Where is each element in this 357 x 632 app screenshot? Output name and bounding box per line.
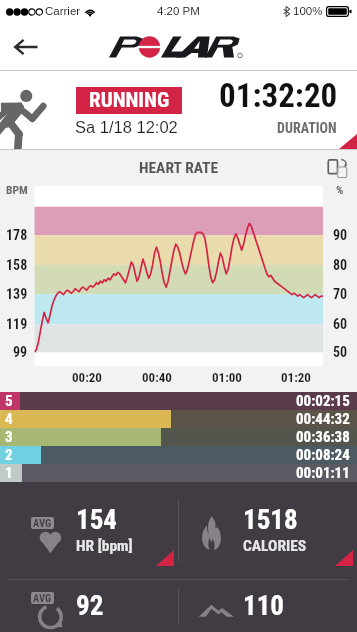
staticText: 00:44:32 xyxy=(296,410,350,428)
staticText: 3 xyxy=(5,428,13,446)
button[interactable]: 4 xyxy=(0,410,357,428)
staticText: 00:02:15 xyxy=(296,392,350,410)
staticText: 154 xyxy=(76,504,117,536)
staticText: 1518 xyxy=(243,504,298,536)
staticText: 139 xyxy=(6,286,28,302)
staticText: 01:20 xyxy=(281,370,311,385)
staticText: 00:08:24 xyxy=(296,446,350,464)
button[interactable]: 3 xyxy=(0,428,357,446)
staticText: HR [bpm] xyxy=(76,537,133,555)
staticText: 90 xyxy=(333,227,348,243)
staticText: HEART RATE xyxy=(139,159,219,177)
staticText: 99 xyxy=(13,344,28,360)
staticText: 119 xyxy=(6,316,28,332)
staticText: 80 xyxy=(333,257,348,273)
staticText: 00:20 xyxy=(72,370,102,385)
staticText: CALORIES xyxy=(243,537,307,555)
staticText: 4:20 PM xyxy=(157,5,200,18)
staticText: 1 xyxy=(5,464,13,482)
staticText: AVG xyxy=(33,517,52,529)
button[interactable]: AVG xyxy=(0,580,178,632)
staticText: 70 xyxy=(333,286,348,302)
staticText: 2 xyxy=(5,446,13,464)
staticText: 4 xyxy=(5,410,13,428)
button[interactable]: 2 xyxy=(0,446,357,464)
staticText: 00:36:38 xyxy=(296,428,350,446)
staticText: % xyxy=(336,183,344,196)
button[interactable]: AVG xyxy=(0,482,178,579)
staticText: RUNNING xyxy=(89,88,170,113)
staticText: 00:40 xyxy=(142,370,172,385)
button[interactable]: 110 xyxy=(179,580,357,632)
staticText: 01:32:20 xyxy=(219,76,338,115)
staticText: 01:00 xyxy=(212,370,242,385)
button[interactable]: 1518 xyxy=(179,482,357,579)
staticText: 5 xyxy=(5,392,13,410)
staticText: 178 xyxy=(6,227,28,243)
staticText: 60 xyxy=(333,316,348,332)
staticText: 50 xyxy=(333,344,348,360)
staticText: 92 xyxy=(76,590,104,622)
staticText: Carrier xyxy=(45,5,81,18)
button[interactable]: Rotate screen xyxy=(323,154,351,182)
button[interactable]: 1 xyxy=(0,464,357,482)
staticText: 110 xyxy=(243,590,284,622)
staticText: DURATION xyxy=(277,120,337,136)
staticText: AVG xyxy=(33,592,52,604)
staticText: 100% xyxy=(293,5,323,18)
staticText: BPM xyxy=(6,183,28,196)
button[interactable]: Back xyxy=(6,27,46,67)
staticText: Sa 1/18 12:02 xyxy=(75,118,178,136)
staticText: 00:01:11 xyxy=(296,464,350,482)
staticText: 158 xyxy=(6,257,28,273)
button[interactable]: 5 xyxy=(0,392,357,410)
